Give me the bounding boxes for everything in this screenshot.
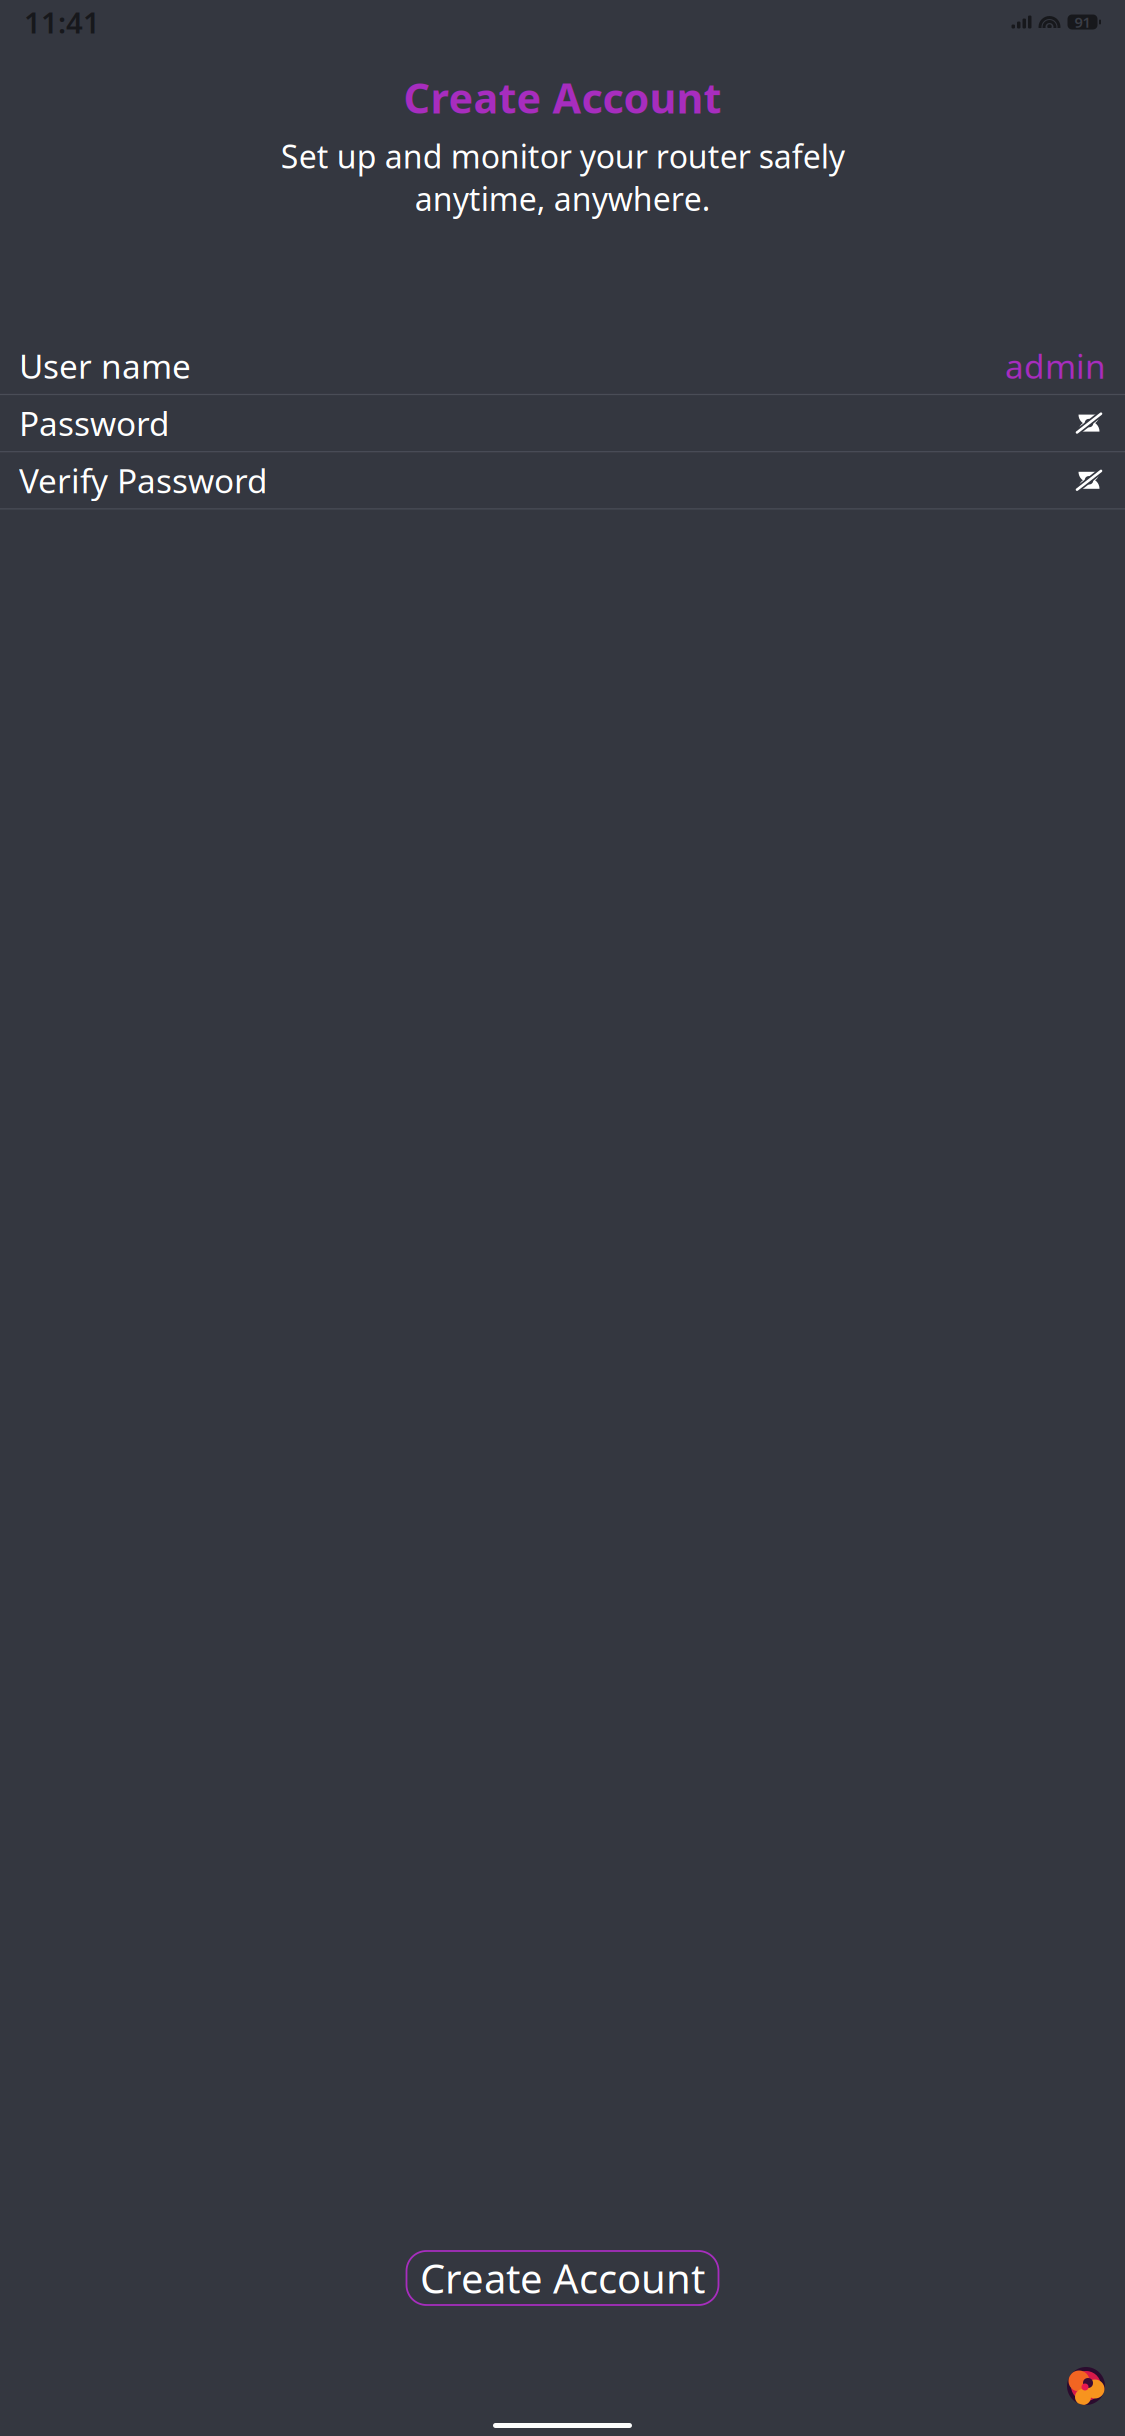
staticText: Create Account [403, 70, 721, 125]
staticText: 11:41 [24, 2, 100, 41]
staticText: User name [19, 344, 191, 388]
staticText: Verify Password [19, 458, 268, 502]
staticText: Set up and monitor your router safely an… [280, 135, 844, 220]
staticText: Create Account [420, 2251, 705, 2304]
staticText: 91 [1074, 12, 1090, 32]
button[interactable]: User name [0, 338, 1125, 394]
button[interactable]: Password [0, 395, 1125, 451]
button[interactable]: Show password [1072, 465, 1106, 495]
button[interactable]: Verify Password [0, 452, 1125, 508]
staticText: Password [19, 401, 170, 445]
button[interactable]: Show password [1072, 408, 1106, 438]
button[interactable]: Create Account [406, 2251, 718, 2305]
staticText: admin [1005, 344, 1106, 388]
